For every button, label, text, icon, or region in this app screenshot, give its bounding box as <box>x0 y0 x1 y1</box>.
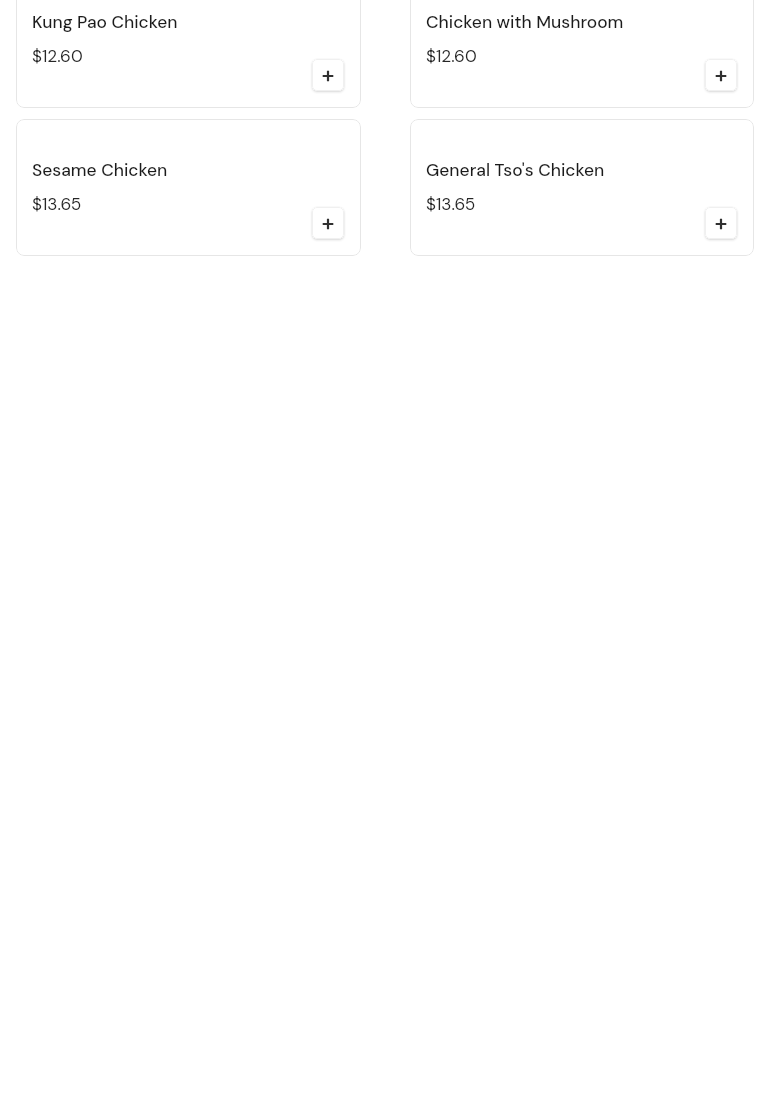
staticText: $13.65 <box>32 193 82 215</box>
staticText: $13.65 <box>426 193 476 215</box>
button[interactable]: Sesame Chicken <box>16 119 361 256</box>
button[interactable]: Add Chicken with Mushroom to order <box>705 59 737 91</box>
button[interactable]: General Tso's Chicken <box>410 119 754 256</box>
staticText: Sesame Chicken <box>32 159 168 182</box>
button[interactable]: Kung Pao Chicken <box>16 0 361 108</box>
button[interactable]: Add Kung Pao Chicken to order <box>312 59 344 91</box>
staticText: $12.60 <box>426 45 477 67</box>
button[interactable]: Add Sesame Chicken to order <box>312 207 344 239</box>
staticText: Kung Pao Chicken <box>32 11 178 34</box>
staticText: Chicken with Mushroom <box>426 11 624 34</box>
staticText: General Tso's Chicken <box>426 159 605 182</box>
button[interactable]: Chicken with Mushroom <box>410 0 754 108</box>
staticText: $12.60 <box>32 45 83 67</box>
button[interactable]: Add General Tso's Chicken to order <box>705 207 737 239</box>
